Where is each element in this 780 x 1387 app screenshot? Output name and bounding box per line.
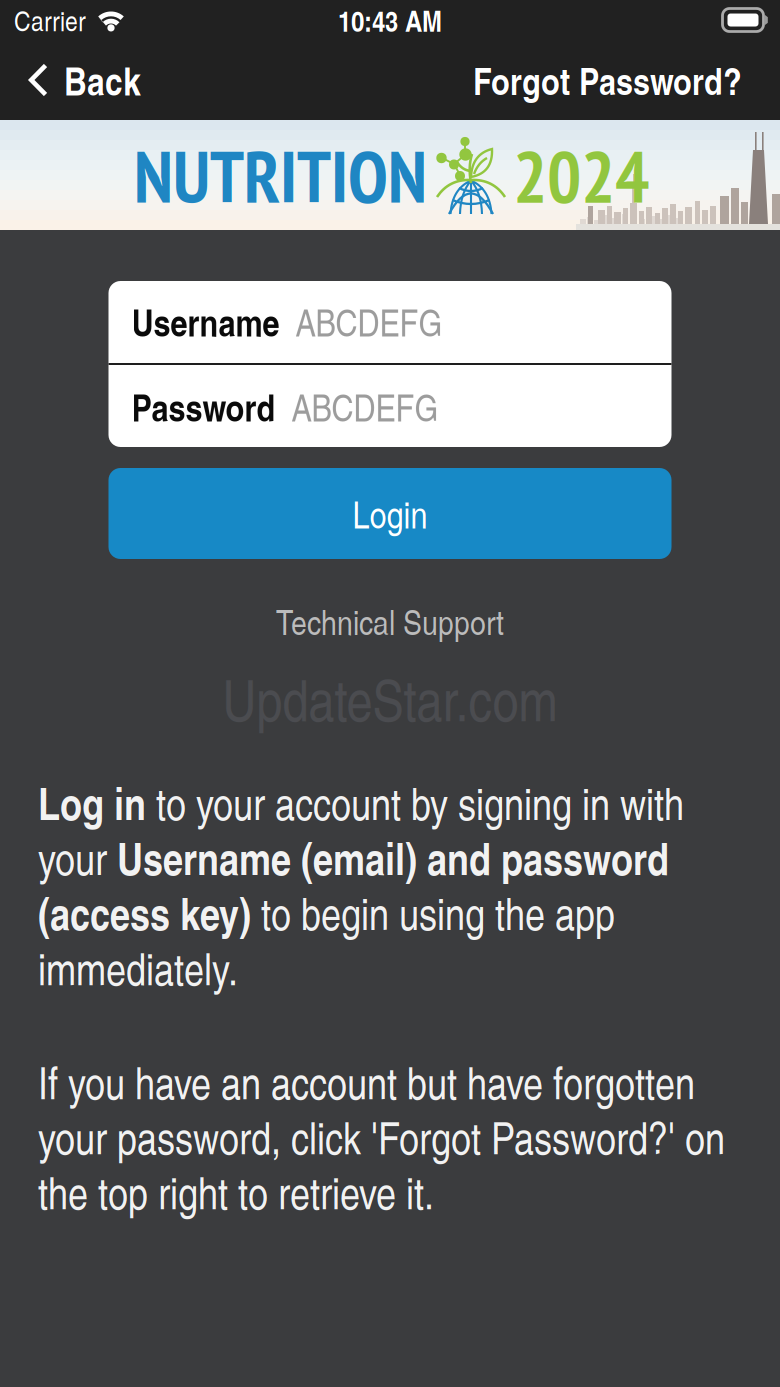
button[interactable]: Login	[108, 468, 671, 559]
button[interactable]: Technical Support	[108, 599, 671, 643]
staticText: If you have an account but have forgotte…	[38, 1052, 695, 1111]
staticText: Login	[352, 488, 427, 539]
button[interactable]: Password	[108, 365, 671, 448]
staticText: Carrier	[14, 1, 86, 39]
button[interactable]: Back	[0, 40, 159, 120]
staticText: immediately.	[38, 938, 238, 997]
staticText: your Username (email) and password	[38, 827, 669, 888]
staticText: (access key) to begin using the app	[38, 882, 615, 943]
staticText: Forgot Password?	[473, 54, 742, 106]
staticText: 10:43 AM	[338, 0, 442, 41]
staticText: ABCDEFG	[295, 296, 442, 347]
staticText: your password, click 'Forgot Password?' …	[38, 1107, 725, 1166]
staticText: the top right to retrieve it.	[38, 1162, 434, 1221]
staticText: NUTRITION	[134, 128, 427, 222]
staticText: Username	[131, 295, 279, 348]
staticText: Password	[131, 380, 275, 433]
staticText: UpdateStar.com	[222, 659, 557, 737]
staticText: 2024	[513, 128, 649, 222]
staticText: Back	[64, 53, 141, 107]
button[interactable]: Forgot Password?	[451, 40, 780, 120]
staticText: Log in to your account by signing in wit…	[38, 772, 684, 833]
button[interactable]: Username	[108, 280, 671, 363]
staticText: Technical Support	[276, 597, 504, 645]
staticText: ABCDEFG	[291, 381, 438, 432]
